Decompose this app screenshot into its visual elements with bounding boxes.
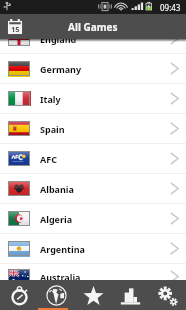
staticText: Australia — [40, 271, 81, 280]
button[interactable]: Albania — [0, 174, 186, 204]
button[interactable]: Timer — [0, 280, 38, 310]
button[interactable]: Settings — [149, 280, 186, 310]
staticText: England — [40, 33, 77, 45]
button[interactable]: Australia — [0, 264, 186, 280]
staticText: Argentina — [40, 243, 85, 255]
button[interactable]: Argentina — [0, 234, 186, 264]
button[interactable]: AFC — [0, 144, 186, 174]
button[interactable]: England — [0, 24, 186, 54]
staticText: Italy — [40, 93, 61, 105]
staticText: Algeria — [40, 213, 73, 225]
staticText: Spain — [40, 123, 65, 135]
button[interactable]: Italy — [0, 84, 186, 114]
staticText: Germany — [40, 63, 82, 75]
button[interactable]: Calendar — [0, 14, 30, 39]
staticText: Albania — [40, 183, 74, 195]
button[interactable]: Spain — [0, 114, 186, 144]
staticText: AFC — [40, 153, 57, 165]
button[interactable]: Globe — [38, 280, 75, 310]
staticText: 15 — [11, 24, 20, 34]
button[interactable]: Favorites — [75, 280, 112, 310]
button[interactable]: Germany — [0, 54, 186, 84]
staticText: 09:43 — [160, 2, 181, 13]
staticText: All Games — [68, 20, 118, 34]
button[interactable]: Stats — [112, 280, 149, 310]
button[interactable]: Algeria — [0, 204, 186, 234]
